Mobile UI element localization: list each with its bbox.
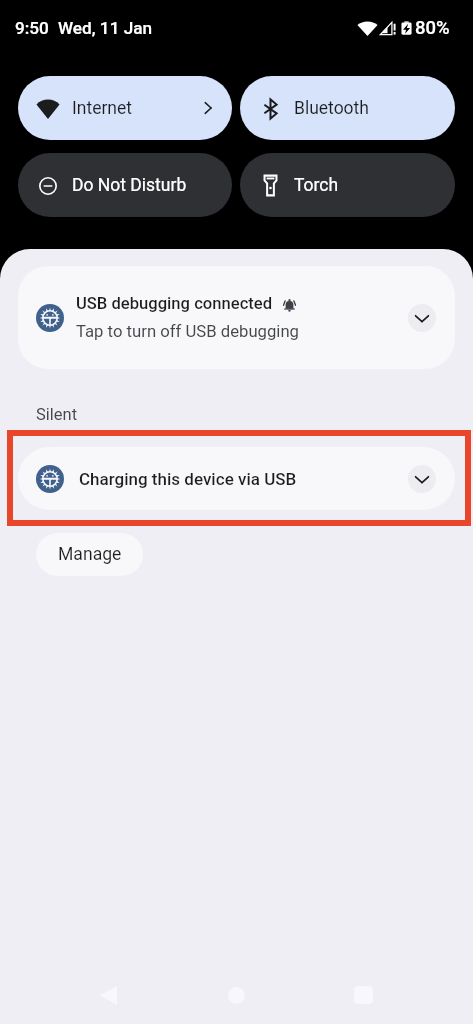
button[interactable]: Torch xyxy=(240,153,455,217)
staticText: 80% xyxy=(415,17,450,39)
button[interactable]: Do Not Disturb xyxy=(18,153,232,217)
staticText: Bluetooth xyxy=(294,98,438,119)
staticText: USB debugging connected xyxy=(76,294,273,313)
button[interactable]: Charging this device via USB xyxy=(18,447,455,510)
button[interactable]: Internet xyxy=(18,76,232,140)
staticText: Torch xyxy=(294,175,438,196)
staticText: 9:50 xyxy=(15,18,49,38)
button[interactable]: Bluetooth xyxy=(240,76,455,140)
staticText: Charging this device via USB xyxy=(79,469,297,489)
button[interactable]: USB debugging connected xyxy=(18,266,455,369)
button[interactable]: Manage xyxy=(36,533,143,576)
button[interactable]: Expand notification xyxy=(408,304,436,332)
staticText: Silent xyxy=(36,405,78,424)
staticText: Do Not Disturb xyxy=(72,175,215,196)
button[interactable]: Expand notification xyxy=(408,465,436,493)
staticText: Tap to turn off USB debugging xyxy=(76,322,299,342)
staticText: Wed, 11 Jan xyxy=(58,18,153,38)
staticText: Manage xyxy=(58,544,122,565)
staticText: Internet xyxy=(72,98,201,119)
